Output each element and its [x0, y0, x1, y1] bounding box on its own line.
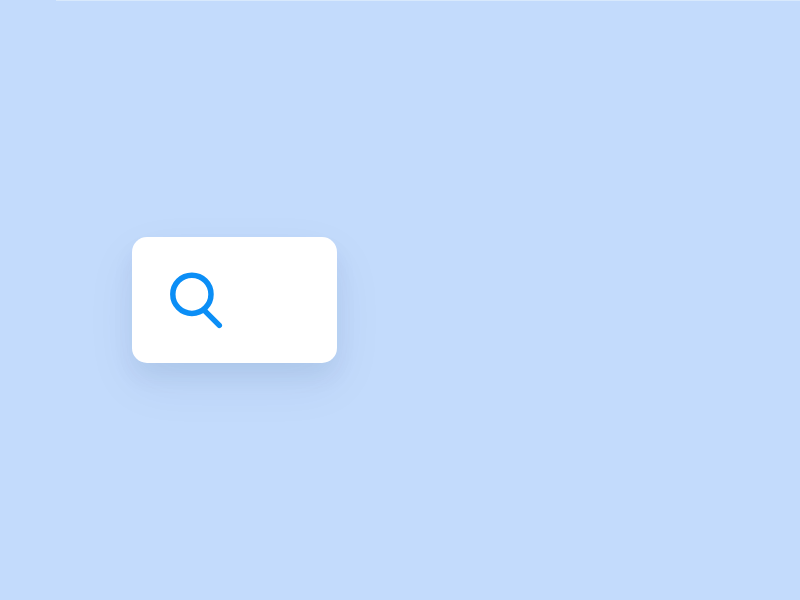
button[interactable]: Search [132, 237, 337, 363]
